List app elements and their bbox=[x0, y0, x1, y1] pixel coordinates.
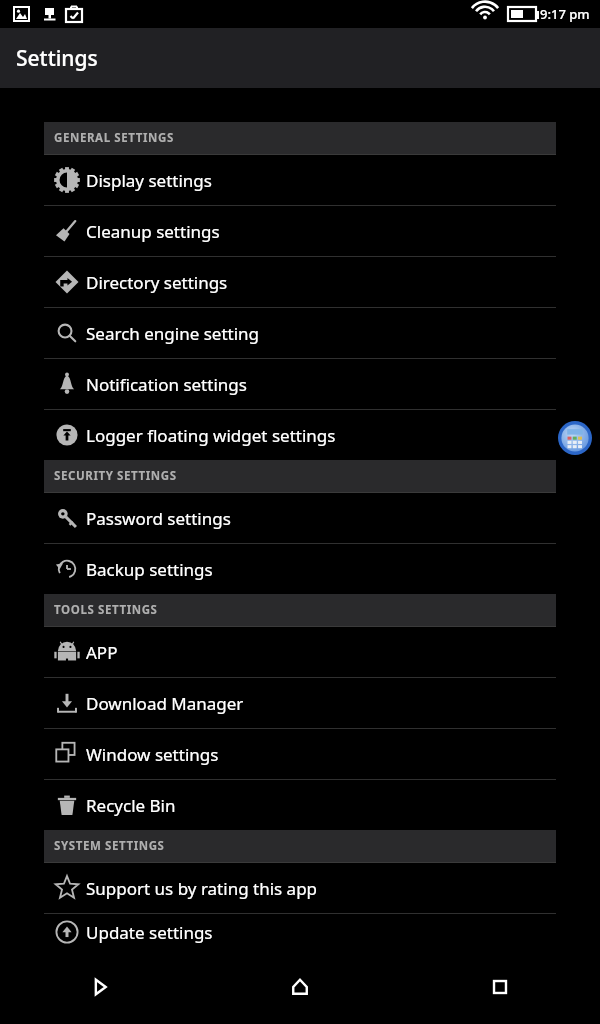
staticText: SECURITY SETTINGS bbox=[54, 468, 177, 484]
button[interactable]: Backup settings bbox=[44, 544, 556, 594]
button[interactable]: Search engine setting bbox=[44, 308, 556, 358]
button[interactable]: Back bbox=[0, 950, 200, 1024]
staticText: Notification settings bbox=[86, 373, 247, 396]
button[interactable]: Password settings bbox=[44, 493, 556, 543]
button[interactable]: Logger floating widget bbox=[558, 421, 592, 455]
staticText: Update settings bbox=[86, 921, 213, 944]
button[interactable]: Directory settings bbox=[44, 257, 556, 307]
staticText: Download Manager bbox=[86, 692, 244, 715]
button[interactable]: Update settings bbox=[44, 914, 556, 950]
button[interactable]: Window settings bbox=[44, 729, 556, 779]
button[interactable]: Logger floating widget settings bbox=[44, 410, 556, 460]
staticText: Password settings bbox=[86, 507, 231, 530]
button[interactable]: Cleanup settings bbox=[44, 206, 556, 256]
staticText: TOOLS SETTINGS bbox=[54, 602, 158, 618]
staticText: Recycle Bin bbox=[86, 794, 176, 817]
button[interactable]: Home bbox=[200, 950, 400, 1024]
staticText: Settings bbox=[16, 44, 98, 73]
staticText: GENERAL SETTINGS bbox=[54, 130, 174, 146]
staticText: 9:17 pm bbox=[540, 5, 590, 23]
staticText: Search engine setting bbox=[86, 322, 260, 345]
button[interactable]: Notification settings bbox=[44, 359, 556, 409]
button[interactable]: APP bbox=[44, 627, 556, 677]
staticText: Backup settings bbox=[86, 558, 213, 581]
staticText: Support us by rating this app bbox=[86, 877, 318, 900]
staticText: Cleanup settings bbox=[86, 220, 220, 243]
staticText: SYSTEM SETTINGS bbox=[54, 838, 165, 854]
button[interactable]: Download Manager bbox=[44, 678, 556, 728]
button[interactable]: Recycle Bin bbox=[44, 780, 556, 830]
button[interactable]: Display settings bbox=[44, 155, 556, 205]
staticText: Directory settings bbox=[86, 271, 228, 294]
button[interactable]: Support us by rating this app bbox=[44, 863, 556, 913]
button[interactable]: Recent apps bbox=[400, 950, 600, 1024]
staticText: Window settings bbox=[86, 743, 219, 766]
staticText: APP bbox=[86, 641, 118, 664]
staticText: Logger floating widget settings bbox=[86, 424, 336, 447]
staticText: Display settings bbox=[86, 169, 212, 192]
